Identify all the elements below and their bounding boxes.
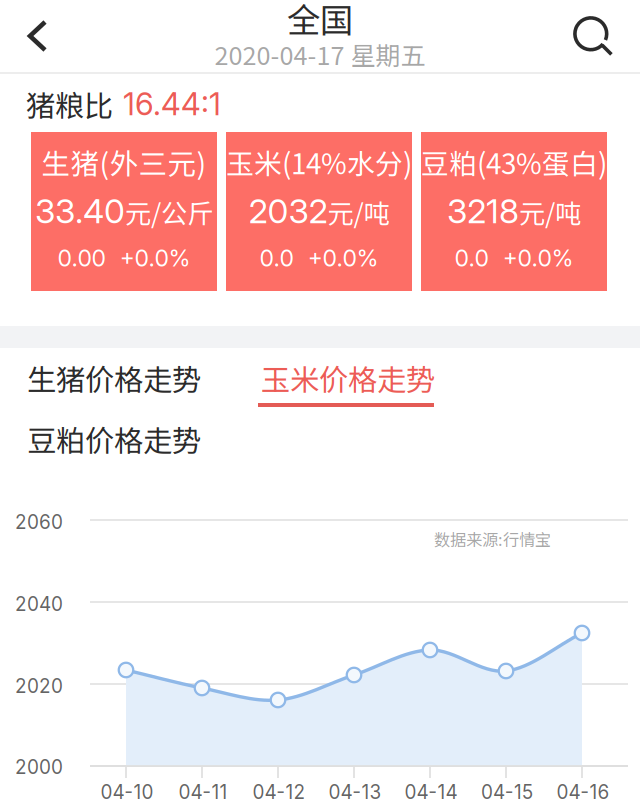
staticText: 生猪(外三元): [41, 141, 206, 183]
staticText: 2040: [15, 592, 63, 615]
button[interactable]: 生猪(外三元): [31, 132, 217, 291]
staticText: 猪粮比: [26, 83, 113, 125]
staticText: 2032: [248, 191, 327, 231]
staticText: 元/公斤: [125, 193, 213, 231]
staticText: 3218: [447, 191, 519, 231]
staticText: 04-11: [178, 780, 227, 803]
staticText: 0.00: [57, 244, 105, 272]
staticText: 2060: [15, 510, 63, 533]
staticText: 04-14: [404, 780, 457, 803]
staticText: 元/吨: [327, 193, 389, 231]
staticText: 全国: [287, 0, 353, 42]
staticText: 玉米价格走势: [261, 357, 435, 399]
button[interactable]: Back: [0, 0, 75, 72]
staticText: 04-13: [328, 780, 381, 803]
staticText: +0.0%: [502, 244, 573, 272]
button[interactable]: Search: [556, 1, 631, 73]
button[interactable]: 玉米(14%水分): [226, 132, 412, 291]
staticText: 玉米(14%水分): [226, 142, 412, 182]
staticText: 2020: [15, 674, 63, 697]
staticText: 04-10: [100, 780, 153, 803]
button[interactable]: 豆粕(43%蛋白): [421, 132, 607, 291]
staticText: 豆粕(43%蛋白): [421, 142, 607, 182]
staticText: 04-12: [252, 780, 305, 803]
staticText: 2000: [15, 755, 63, 778]
staticText: +0.0%: [307, 244, 378, 272]
staticText: 04-16: [556, 780, 609, 803]
staticText: 元/吨: [519, 193, 581, 231]
staticText: +0.0%: [119, 244, 190, 272]
staticText: 生猪价格走势: [27, 357, 201, 399]
staticText: 04-15: [481, 780, 533, 803]
staticText: 0.0: [259, 244, 293, 272]
button[interactable]: 玉米价格走势: [261, 359, 451, 409]
button[interactable]: 生猪价格走势: [27, 356, 227, 400]
button[interactable]: 豆粕价格走势: [27, 417, 227, 461]
staticText: 33.40: [35, 191, 125, 231]
staticText: 0.0: [454, 244, 488, 272]
staticText: 2020-04-17 星期五: [214, 36, 425, 72]
staticText: 豆粕价格走势: [27, 418, 201, 460]
staticText: 16.44:1: [123, 85, 221, 123]
staticText: 数据来源:行情宝: [434, 527, 551, 551]
